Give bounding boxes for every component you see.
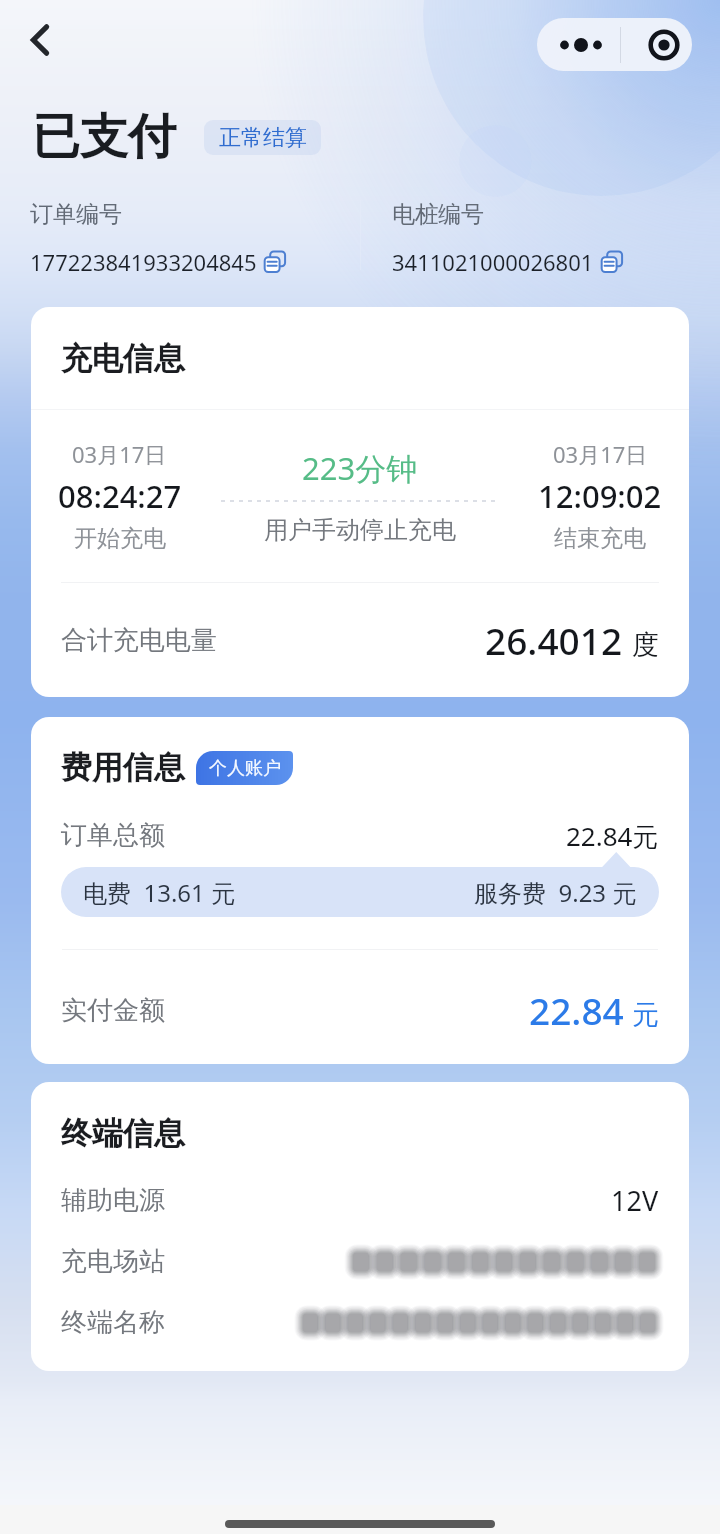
staticText: 电费 13.61 元	[83, 876, 236, 909]
staticText: 终端信息	[61, 1114, 185, 1153]
button[interactable]: Copy	[600, 250, 624, 274]
staticText: 辅助电源	[61, 1184, 165, 1217]
staticText: 223分钟	[302, 447, 418, 489]
staticText: 22.84	[529, 985, 624, 1035]
button[interactable]: Copy	[263, 250, 287, 274]
button[interactable]: Back	[14, 14, 66, 66]
staticText: 合计充电电量	[61, 624, 217, 657]
staticText: 12V	[611, 1182, 659, 1219]
staticText: 元	[632, 998, 659, 1032]
staticText: 实付金额	[61, 994, 165, 1027]
staticText: 充电信息	[61, 339, 185, 378]
staticText: 08:24:27	[58, 475, 182, 517]
staticText: 电桩编号	[392, 200, 484, 229]
staticText: 03月17日	[553, 439, 648, 469]
staticText: 开始充电	[74, 524, 166, 553]
staticText: 结束充电	[554, 524, 646, 553]
button[interactable]: More options	[537, 18, 620, 71]
staticText: 已支付	[32, 107, 176, 167]
staticText: 正常结算	[219, 124, 307, 152]
staticText: 个人账户	[209, 757, 281, 780]
staticText: 服务费 9.23 元	[474, 876, 637, 909]
staticText: 22.84元	[566, 818, 659, 852]
staticText: 费用信息	[61, 748, 185, 787]
staticText: 度	[632, 628, 659, 662]
staticText: 3411021000026801	[392, 247, 594, 277]
staticText: 订单编号	[30, 200, 122, 229]
staticText: 03月17日	[72, 439, 167, 469]
staticText: 12:09:02	[538, 475, 662, 517]
staticText: 用户手动停止充电	[264, 515, 456, 545]
staticText: 订单总额	[61, 819, 165, 852]
staticText: 177223841933204845	[30, 247, 257, 277]
button[interactable]: Close	[621, 18, 692, 71]
staticText: 充电场站	[61, 1245, 165, 1278]
staticText: 26.4012	[485, 615, 623, 665]
staticText: 终端名称	[61, 1306, 165, 1339]
